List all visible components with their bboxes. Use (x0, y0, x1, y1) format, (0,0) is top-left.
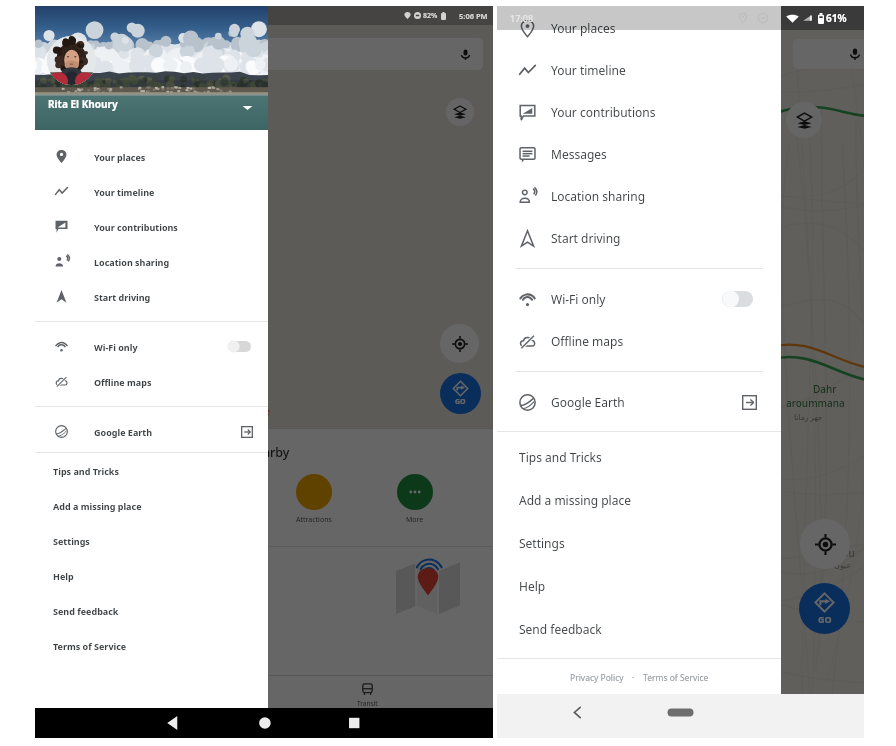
button[interactable]: Wi-Fi only (35, 329, 268, 364)
button[interactable]: Voice search (793, 39, 864, 69)
staticText: Messages (551, 146, 607, 162)
button[interactable]: Help (497, 564, 781, 607)
button[interactable]: My location (800, 519, 850, 569)
button[interactable]: Google Earth (497, 381, 781, 423)
button[interactable]: Your timeline (497, 49, 781, 91)
staticText: جهر رمانا (794, 412, 823, 422)
button[interactable]: Start driving (35, 279, 268, 314)
staticText: You (837, 546, 855, 560)
button[interactable]: Map layers (446, 98, 474, 126)
button[interactable]: Location sharing (497, 175, 781, 217)
staticText: Your contributions (94, 221, 178, 233)
button[interactable]: Start driving (497, 217, 781, 259)
staticText: Add a missing place (519, 492, 631, 508)
button[interactable]: Tips and Tricks (35, 453, 268, 488)
staticText: Settings (519, 535, 565, 551)
staticText: Location sharing (94, 256, 170, 268)
staticText: Offline maps (94, 376, 152, 388)
button[interactable]: Offline maps (497, 320, 781, 362)
button[interactable]: GO (799, 583, 850, 634)
staticText: 82% (423, 11, 438, 21)
button[interactable]: Add a missing place (35, 488, 268, 523)
staticText: More (406, 515, 424, 525)
staticText: 17:08 (510, 12, 534, 24)
staticText: Start driving (94, 291, 151, 303)
staticText: Dahr (813, 382, 837, 396)
staticText: o (247, 404, 254, 418)
staticText: Google Earth (94, 426, 153, 438)
staticText: Transit (357, 699, 378, 708)
staticText: Help (53, 570, 74, 582)
button[interactable]: Terms of Service (35, 628, 268, 663)
staticText: Send feedback (519, 621, 602, 637)
staticText: GO (818, 613, 832, 625)
staticText: l (261, 404, 264, 418)
button[interactable]: Wi-Fi only (497, 278, 781, 320)
staticText: GO (455, 397, 466, 407)
staticText: Wi-Fi only (94, 341, 138, 353)
staticText: Send feedback (53, 605, 119, 617)
other: Voice search (849, 48, 861, 60)
staticText: Tips and Tricks (53, 465, 119, 477)
button[interactable]: Messages (497, 133, 781, 175)
button[interactable]: Settings (497, 521, 781, 564)
staticText: Tips and Tricks (519, 449, 602, 465)
button[interactable]: Send feedback (35, 593, 268, 628)
staticText: Offline maps (551, 333, 624, 349)
staticText: Location sharing (551, 188, 646, 204)
button[interactable]: Location sharing (35, 244, 268, 279)
button[interactable]: Send feedback (497, 607, 781, 650)
button[interactable]: Tips and Tricks (497, 435, 781, 478)
staticText: Attractions (296, 515, 332, 525)
staticText: 5:06 PM (459, 11, 488, 21)
button[interactable]: Map layers (786, 102, 822, 138)
button[interactable]: Profile photo (47, 36, 96, 85)
button[interactable]: Your places (497, 7, 781, 49)
button[interactable]: Offline maps (35, 364, 268, 399)
staticText: Your places (94, 151, 146, 163)
staticText: Google Earth (551, 394, 625, 410)
button[interactable]: Google Earth (35, 414, 268, 449)
button[interactable]: Voice search (45, 38, 483, 70)
button[interactable]: Your contributions (35, 209, 268, 244)
staticText: Your places (551, 20, 616, 36)
staticText: Your contributions (551, 104, 656, 120)
button[interactable]: Attractions (296, 474, 332, 525)
staticText: 61% (826, 11, 847, 25)
staticText: aroummana (786, 396, 845, 410)
staticText: Your timeline (94, 186, 155, 198)
button[interactable]: My location (440, 324, 479, 363)
staticText: Nearby (246, 444, 290, 461)
button[interactable]: Your places (35, 139, 268, 174)
staticText: Rita El Khoury (48, 97, 118, 111)
staticText: Wi-Fi only (551, 291, 606, 307)
staticText: Your timeline (551, 62, 626, 78)
button[interactable]: More (397, 474, 433, 525)
button[interactable]: GO (440, 373, 481, 414)
staticText: e (264, 404, 270, 418)
staticText: · (632, 672, 635, 684)
staticText: g (254, 404, 261, 418)
staticText: عيون (834, 561, 852, 570)
button[interactable]: Settings (35, 523, 268, 558)
button[interactable]: Switch account (241, 101, 254, 114)
button[interactable]: Transit (357, 683, 378, 708)
button[interactable]: Privacy Policy (570, 672, 624, 684)
other: Voice search (460, 49, 471, 60)
button[interactable]: Terms of Service (643, 672, 709, 684)
staticText: Terms of Service (53, 640, 127, 652)
staticText: Help (519, 578, 546, 594)
button[interactable]: Add a missing place (497, 478, 781, 521)
staticText: Start driving (551, 230, 621, 246)
button[interactable]: Your contributions (497, 91, 781, 133)
button[interactable]: Help (35, 558, 268, 593)
staticText: Add a missing place (53, 500, 142, 512)
button[interactable]: Your timeline (35, 174, 268, 209)
staticText: Settings (53, 535, 90, 547)
